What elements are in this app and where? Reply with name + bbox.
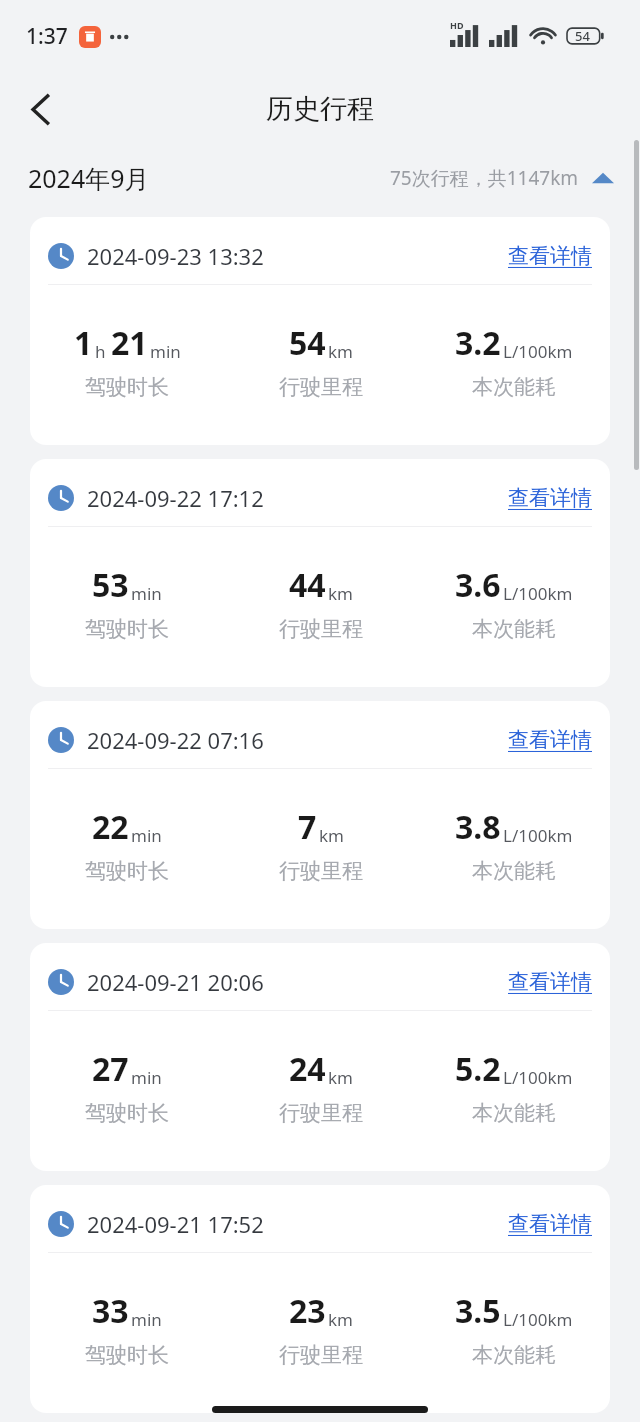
staticText: 历史行程 [266, 92, 374, 126]
staticText: km [328, 1308, 353, 1331]
staticText: 33 [92, 1289, 129, 1333]
staticText: 驾驶时长 [85, 1100, 169, 1126]
staticText: 3.6 [455, 563, 501, 607]
button[interactable]: 查看详情 [508, 485, 592, 511]
staticText: 行驶里程 [279, 374, 363, 400]
staticText: 驾驶时长 [85, 1342, 169, 1368]
staticText: 本次能耗 [472, 374, 556, 400]
button[interactable]: 查看详情 [508, 727, 592, 753]
staticText: 54 [575, 27, 590, 45]
staticText: min [150, 340, 181, 363]
staticText: L/100km [503, 824, 573, 847]
staticText: km [328, 1066, 353, 1089]
staticText: 查看详情 [508, 243, 592, 269]
staticText: 行驶里程 [279, 858, 363, 884]
staticText: 查看详情 [508, 969, 592, 995]
staticText: 2024-09-22 07:16 [87, 725, 264, 755]
staticText: 44 [289, 563, 326, 607]
staticText: 2024年9月 [28, 161, 150, 195]
staticText: L/100km [503, 582, 573, 605]
staticText: 本次能耗 [472, 858, 556, 884]
staticText: 24 [289, 1047, 326, 1091]
staticText: km [319, 824, 344, 847]
staticText: 3.8 [455, 805, 501, 849]
staticText: km [328, 582, 353, 605]
button[interactable]: 查看详情 [508, 969, 592, 995]
button[interactable]: 2024年9月 [0, 146, 640, 210]
staticText: 27 [92, 1047, 129, 1091]
staticText: 行驶里程 [279, 1342, 363, 1368]
staticText: 7 [298, 805, 317, 849]
staticText: min [131, 582, 162, 605]
staticText: 行驶里程 [279, 1100, 363, 1126]
staticText: 21 [111, 321, 148, 365]
staticText: km [328, 340, 353, 363]
staticText: 2024-09-21 20:06 [87, 967, 264, 997]
button[interactable]: 返回 [16, 85, 64, 133]
staticText: L/100km [503, 1066, 573, 1089]
staticText: 驾驶时长 [85, 858, 169, 884]
staticText: L/100km [503, 340, 573, 363]
staticText: 2024-09-22 17:12 [87, 483, 264, 513]
staticText: 3.2 [455, 321, 501, 365]
staticText: 1:37 [26, 22, 68, 51]
staticText: 本次能耗 [472, 616, 556, 642]
staticText: 驾驶时长 [85, 616, 169, 642]
staticText: 查看详情 [508, 1211, 592, 1237]
staticText: 54 [289, 321, 326, 365]
staticText: 53 [92, 563, 129, 607]
staticText: 查看详情 [508, 727, 592, 753]
staticText: HD [450, 19, 464, 31]
staticText: 驾驶时长 [85, 374, 169, 400]
staticText: 2024-09-21 17:52 [87, 1209, 264, 1239]
button[interactable]: 查看详情 [508, 1211, 592, 1237]
button[interactable]: 2024-09-22 17:12 [30, 459, 610, 687]
button[interactable]: 查看详情 [508, 243, 592, 269]
staticText: L/100km [503, 1308, 573, 1331]
staticText: 3.5 [455, 1289, 501, 1333]
button[interactable]: 2024-09-23 13:32 [30, 217, 610, 445]
button[interactable]: 2024-09-22 07:16 [30, 701, 610, 929]
staticText: 23 [289, 1289, 326, 1333]
staticText: min [131, 1066, 162, 1089]
staticText: min [131, 1308, 162, 1331]
staticText: 本次能耗 [472, 1100, 556, 1126]
staticText: 5.2 [455, 1047, 501, 1091]
staticText: 75次行程，共1147km [390, 165, 579, 191]
other: 收起 [592, 171, 614, 185]
button[interactable]: 2024-09-21 20:06 [30, 943, 610, 1171]
staticText: 22 [92, 805, 129, 849]
staticText: 查看详情 [508, 485, 592, 511]
staticText: min [131, 824, 162, 847]
staticText: 本次能耗 [472, 1342, 556, 1368]
staticText: h [95, 340, 106, 363]
staticText: 2024-09-23 13:32 [87, 241, 264, 271]
button[interactable]: 2024-09-21 17:52 [30, 1185, 610, 1413]
staticText: 1 [74, 321, 93, 365]
staticText: 行驶里程 [279, 616, 363, 642]
